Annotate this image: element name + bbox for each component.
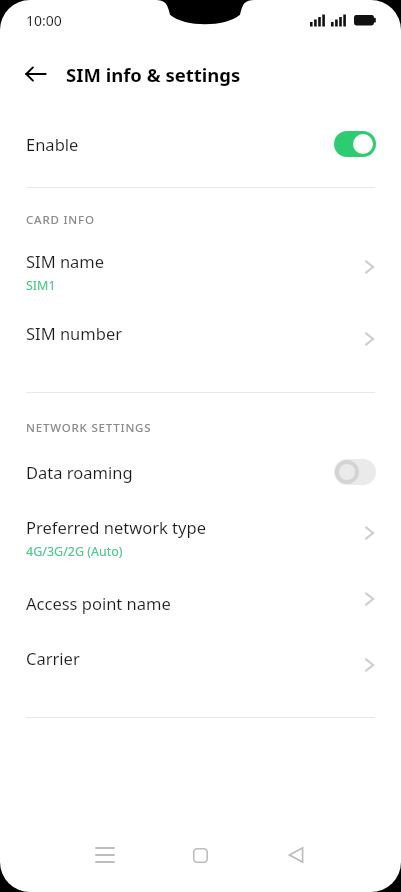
staticText: SIM name <box>26 250 105 272</box>
staticText: 4G/3G/2G (Auto) <box>26 543 123 560</box>
button[interactable]: Off <box>334 459 376 485</box>
staticText: SIM info & settings <box>66 62 241 87</box>
button[interactable] <box>0 447 401 497</box>
button[interactable] <box>0 236 401 294</box>
staticText: Carrier <box>26 647 80 669</box>
button[interactable] <box>0 119 401 169</box>
staticText: Data roaming <box>26 461 133 483</box>
staticText: SIM1 <box>26 277 56 294</box>
staticText: CARD INFO <box>26 212 95 228</box>
staticText: NETWORK SETTINGS <box>26 420 152 436</box>
button[interactable] <box>0 633 401 679</box>
staticText: SIM number <box>26 322 122 344</box>
staticText: Enable <box>26 133 79 155</box>
button[interactable]: Home <box>178 833 222 877</box>
button[interactable]: Back <box>274 833 318 877</box>
button[interactable]: Recent apps <box>83 833 127 877</box>
staticText: Preferred network type <box>26 516 206 538</box>
button[interactable]: Back <box>14 52 58 96</box>
button[interactable] <box>0 502 401 560</box>
button[interactable] <box>0 578 401 624</box>
button[interactable]: On <box>334 131 376 157</box>
button[interactable] <box>0 308 401 354</box>
staticText: Access point name <box>26 592 171 614</box>
staticText: 10:00 <box>26 11 62 30</box>
